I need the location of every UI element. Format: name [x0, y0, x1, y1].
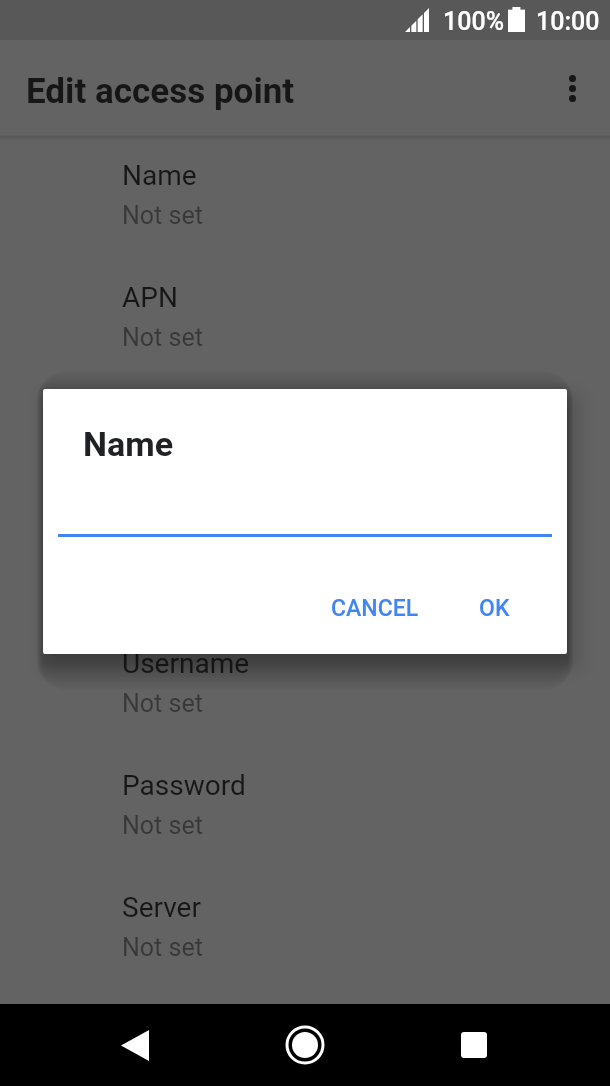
staticText: 10:00 — [536, 7, 600, 36]
staticText: Not set — [122, 323, 203, 352]
button[interactable]: More options — [544, 60, 601, 117]
staticText: Password — [122, 769, 246, 802]
staticText: OK — [479, 595, 510, 622]
staticText: Username — [122, 647, 250, 680]
staticText: Not set — [122, 811, 203, 840]
staticText: 100% — [443, 7, 504, 36]
staticText: Not set — [122, 445, 203, 474]
button[interactable]: Home — [275, 1015, 335, 1075]
staticText: Not set — [122, 201, 203, 230]
button[interactable]: Port — [0, 514, 610, 636]
staticText: Name — [83, 424, 174, 464]
staticText: Port — [122, 525, 175, 558]
button[interactable]: Username — [0, 636, 610, 758]
button[interactable]: Back — [105, 1015, 165, 1075]
button[interactable]: Proxy — [0, 392, 610, 514]
button[interactable]: Server — [0, 880, 610, 1002]
staticText: Not set — [122, 933, 203, 962]
staticText: Edit access point — [26, 71, 295, 112]
button[interactable]: CANCEL — [315, 581, 435, 636]
staticText: Server — [122, 891, 201, 924]
staticText: Name — [122, 159, 197, 192]
button[interactable]: OK — [463, 581, 526, 636]
button[interactable]: Name — [0, 148, 610, 270]
staticText: Not set — [122, 689, 203, 718]
button[interactable]: Recents — [444, 1015, 504, 1075]
staticText: CANCEL — [331, 595, 419, 622]
button[interactable]: APN — [0, 270, 610, 392]
button[interactable]: Password — [0, 758, 610, 880]
staticText: APN — [122, 281, 178, 314]
